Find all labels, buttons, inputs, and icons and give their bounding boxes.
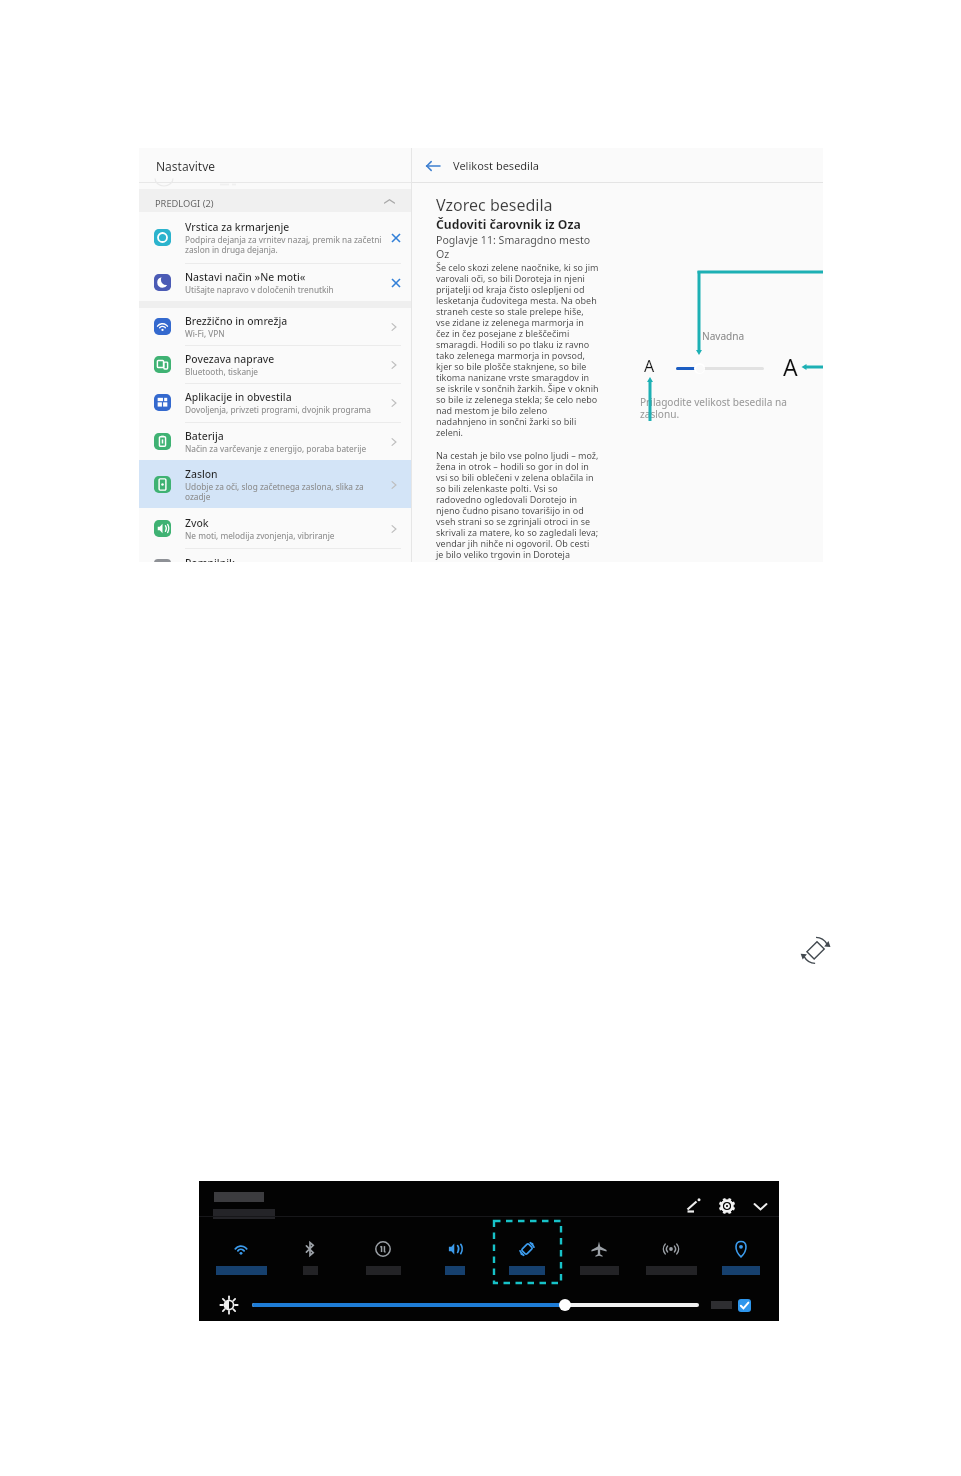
button[interactable]: Brightness xyxy=(221,1297,237,1313)
staticText: Brezžično in omrežja xyxy=(185,314,288,328)
button[interactable]: Sound xyxy=(422,1221,488,1283)
button[interactable]: Expand xyxy=(753,1199,768,1214)
staticText: Na cestah je bilo vse polno ljudi – mož,… xyxy=(436,449,599,560)
staticText: Bluetooth, tiskanje xyxy=(185,366,259,377)
button[interactable]: Vrstica za krmarjenje xyxy=(139,212,411,263)
staticText: Zvok xyxy=(185,516,209,530)
staticText: Še celo skozi zelene naočnike, ki so jim… xyxy=(436,261,599,438)
staticText: PREDLOGI (2) xyxy=(155,197,214,210)
button[interactable]: Brightness slider xyxy=(248,1295,703,1315)
staticText: Aplikacije in obvestila xyxy=(185,390,292,404)
button[interactable]: Bluetooth xyxy=(277,1221,343,1283)
staticText: Poglavje 11: Smaragdno mesto Oz xyxy=(436,233,599,261)
staticText: Nastavi način »Ne moti« xyxy=(185,270,306,284)
staticText: Pomnilnik xyxy=(185,556,235,562)
button[interactable]: Aplikacije in obvestila xyxy=(139,383,411,422)
staticText: Zaslon xyxy=(185,467,218,481)
other: Auto rotate xyxy=(801,933,832,964)
button[interactable]: Brezžično in omrežja xyxy=(139,308,411,345)
button[interactable]: Dismiss suggestion xyxy=(390,232,402,244)
button[interactable]: Baterija xyxy=(139,422,411,460)
button[interactable]: Wi-Fi xyxy=(208,1221,274,1283)
button[interactable]: Text size slider xyxy=(672,359,768,379)
button[interactable]: Automatic brightness xyxy=(738,1299,751,1312)
button[interactable]: Airplane mode xyxy=(566,1221,632,1283)
button[interactable]: Edit xyxy=(686,1198,701,1213)
staticText: Udobje za oči, slog začetnega zaslona, s… xyxy=(185,481,364,502)
staticText: Podpira dejanja za vrnitev nazaj, premik… xyxy=(185,234,382,255)
staticText: Utišajte napravo v določenih trenutkih xyxy=(185,284,334,295)
button[interactable]: Collapse xyxy=(383,195,396,208)
staticText: A xyxy=(783,351,798,382)
button[interactable]: Zvok xyxy=(139,508,411,548)
button[interactable]: Dismiss suggestion xyxy=(390,277,402,289)
staticText: Baterija xyxy=(185,429,224,443)
staticText: Povezava naprave xyxy=(185,352,275,366)
staticText: Čudoviti čarovnik iz Oza xyxy=(436,216,581,233)
staticText: Velikost besedila xyxy=(453,158,539,173)
staticText: Dovoljenja, privzeti programi, dvojnik p… xyxy=(185,404,371,415)
staticText: Wi-Fi, VPN xyxy=(185,328,225,339)
staticText: Nastavitve xyxy=(156,158,216,174)
staticText: Ne moti, melodija zvonjenja, vibriranje xyxy=(185,530,335,541)
button[interactable]: Pomnilnik xyxy=(139,548,411,562)
button[interactable]: Hotspot xyxy=(638,1221,704,1283)
staticText: Način za varčevanje z energijo, poraba b… xyxy=(185,443,367,454)
button[interactable]: Location xyxy=(708,1221,774,1283)
staticText: Navadna xyxy=(702,329,745,343)
button[interactable]: Povezava naprave xyxy=(139,345,411,383)
staticText: Vrstica za krmarjenje xyxy=(185,220,290,234)
staticText: Prilagodite velikost besedila na zaslonu… xyxy=(640,395,787,421)
button[interactable]: Auto-rotate xyxy=(494,1221,560,1283)
button[interactable]: Nastavi način »Ne moti« xyxy=(139,263,411,301)
button[interactable]: Mobile data xyxy=(350,1221,416,1283)
staticText: Vzorec besedila xyxy=(436,194,553,216)
staticText: A xyxy=(644,355,655,377)
button[interactable]: Settings xyxy=(719,1198,735,1214)
button[interactable]: Back xyxy=(425,158,441,174)
button[interactable]: Zaslon xyxy=(139,460,411,508)
